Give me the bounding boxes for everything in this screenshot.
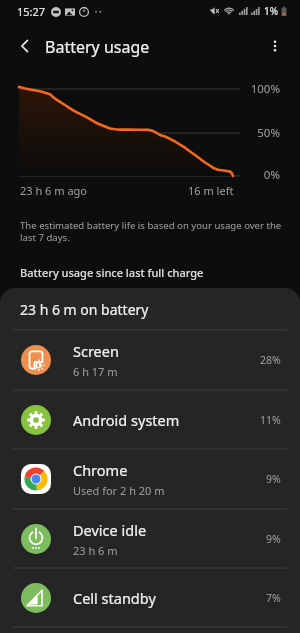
staticText: 1% xyxy=(264,4,279,18)
staticText: The estimated battery life is based on y… xyxy=(20,219,282,244)
button[interactable]: Chrome xyxy=(0,449,300,509)
button[interactable]: Android system xyxy=(0,390,300,449)
button[interactable]: More options xyxy=(262,33,288,59)
staticText: Battery usage xyxy=(45,36,150,58)
staticText: 23 h 6 m ago xyxy=(20,183,87,198)
staticText: 9% xyxy=(266,532,281,546)
staticText: Android system xyxy=(73,410,180,430)
button[interactable]: Cell standby xyxy=(0,568,300,627)
staticText: Used for 2 h 20 m xyxy=(73,483,165,498)
button[interactable]: Device idle xyxy=(0,509,300,568)
staticText: 11% xyxy=(260,413,281,427)
staticText: 9% xyxy=(266,472,281,486)
staticText: Device idle xyxy=(73,520,147,540)
staticText: 15:27 xyxy=(17,4,46,19)
button[interactable]: Screen xyxy=(0,330,300,390)
staticText: Cell standby xyxy=(73,588,156,608)
staticText: 23 h 6 m on battery xyxy=(20,300,149,319)
staticText: 100% xyxy=(232,81,280,97)
staticText: Screen xyxy=(73,341,119,361)
staticText: Chrome xyxy=(73,460,128,480)
staticText: 7% xyxy=(266,591,281,605)
staticText: 0% xyxy=(232,167,280,183)
staticText: 6 h 17 m xyxy=(73,364,118,379)
staticText: 16 m left xyxy=(188,183,234,198)
staticText: 23 h 6 m xyxy=(73,543,118,558)
button[interactable]: Back xyxy=(11,32,39,60)
staticText: 50% xyxy=(232,125,280,141)
staticText: 28% xyxy=(260,353,281,367)
staticText: Battery usage since last full charge xyxy=(20,265,204,280)
